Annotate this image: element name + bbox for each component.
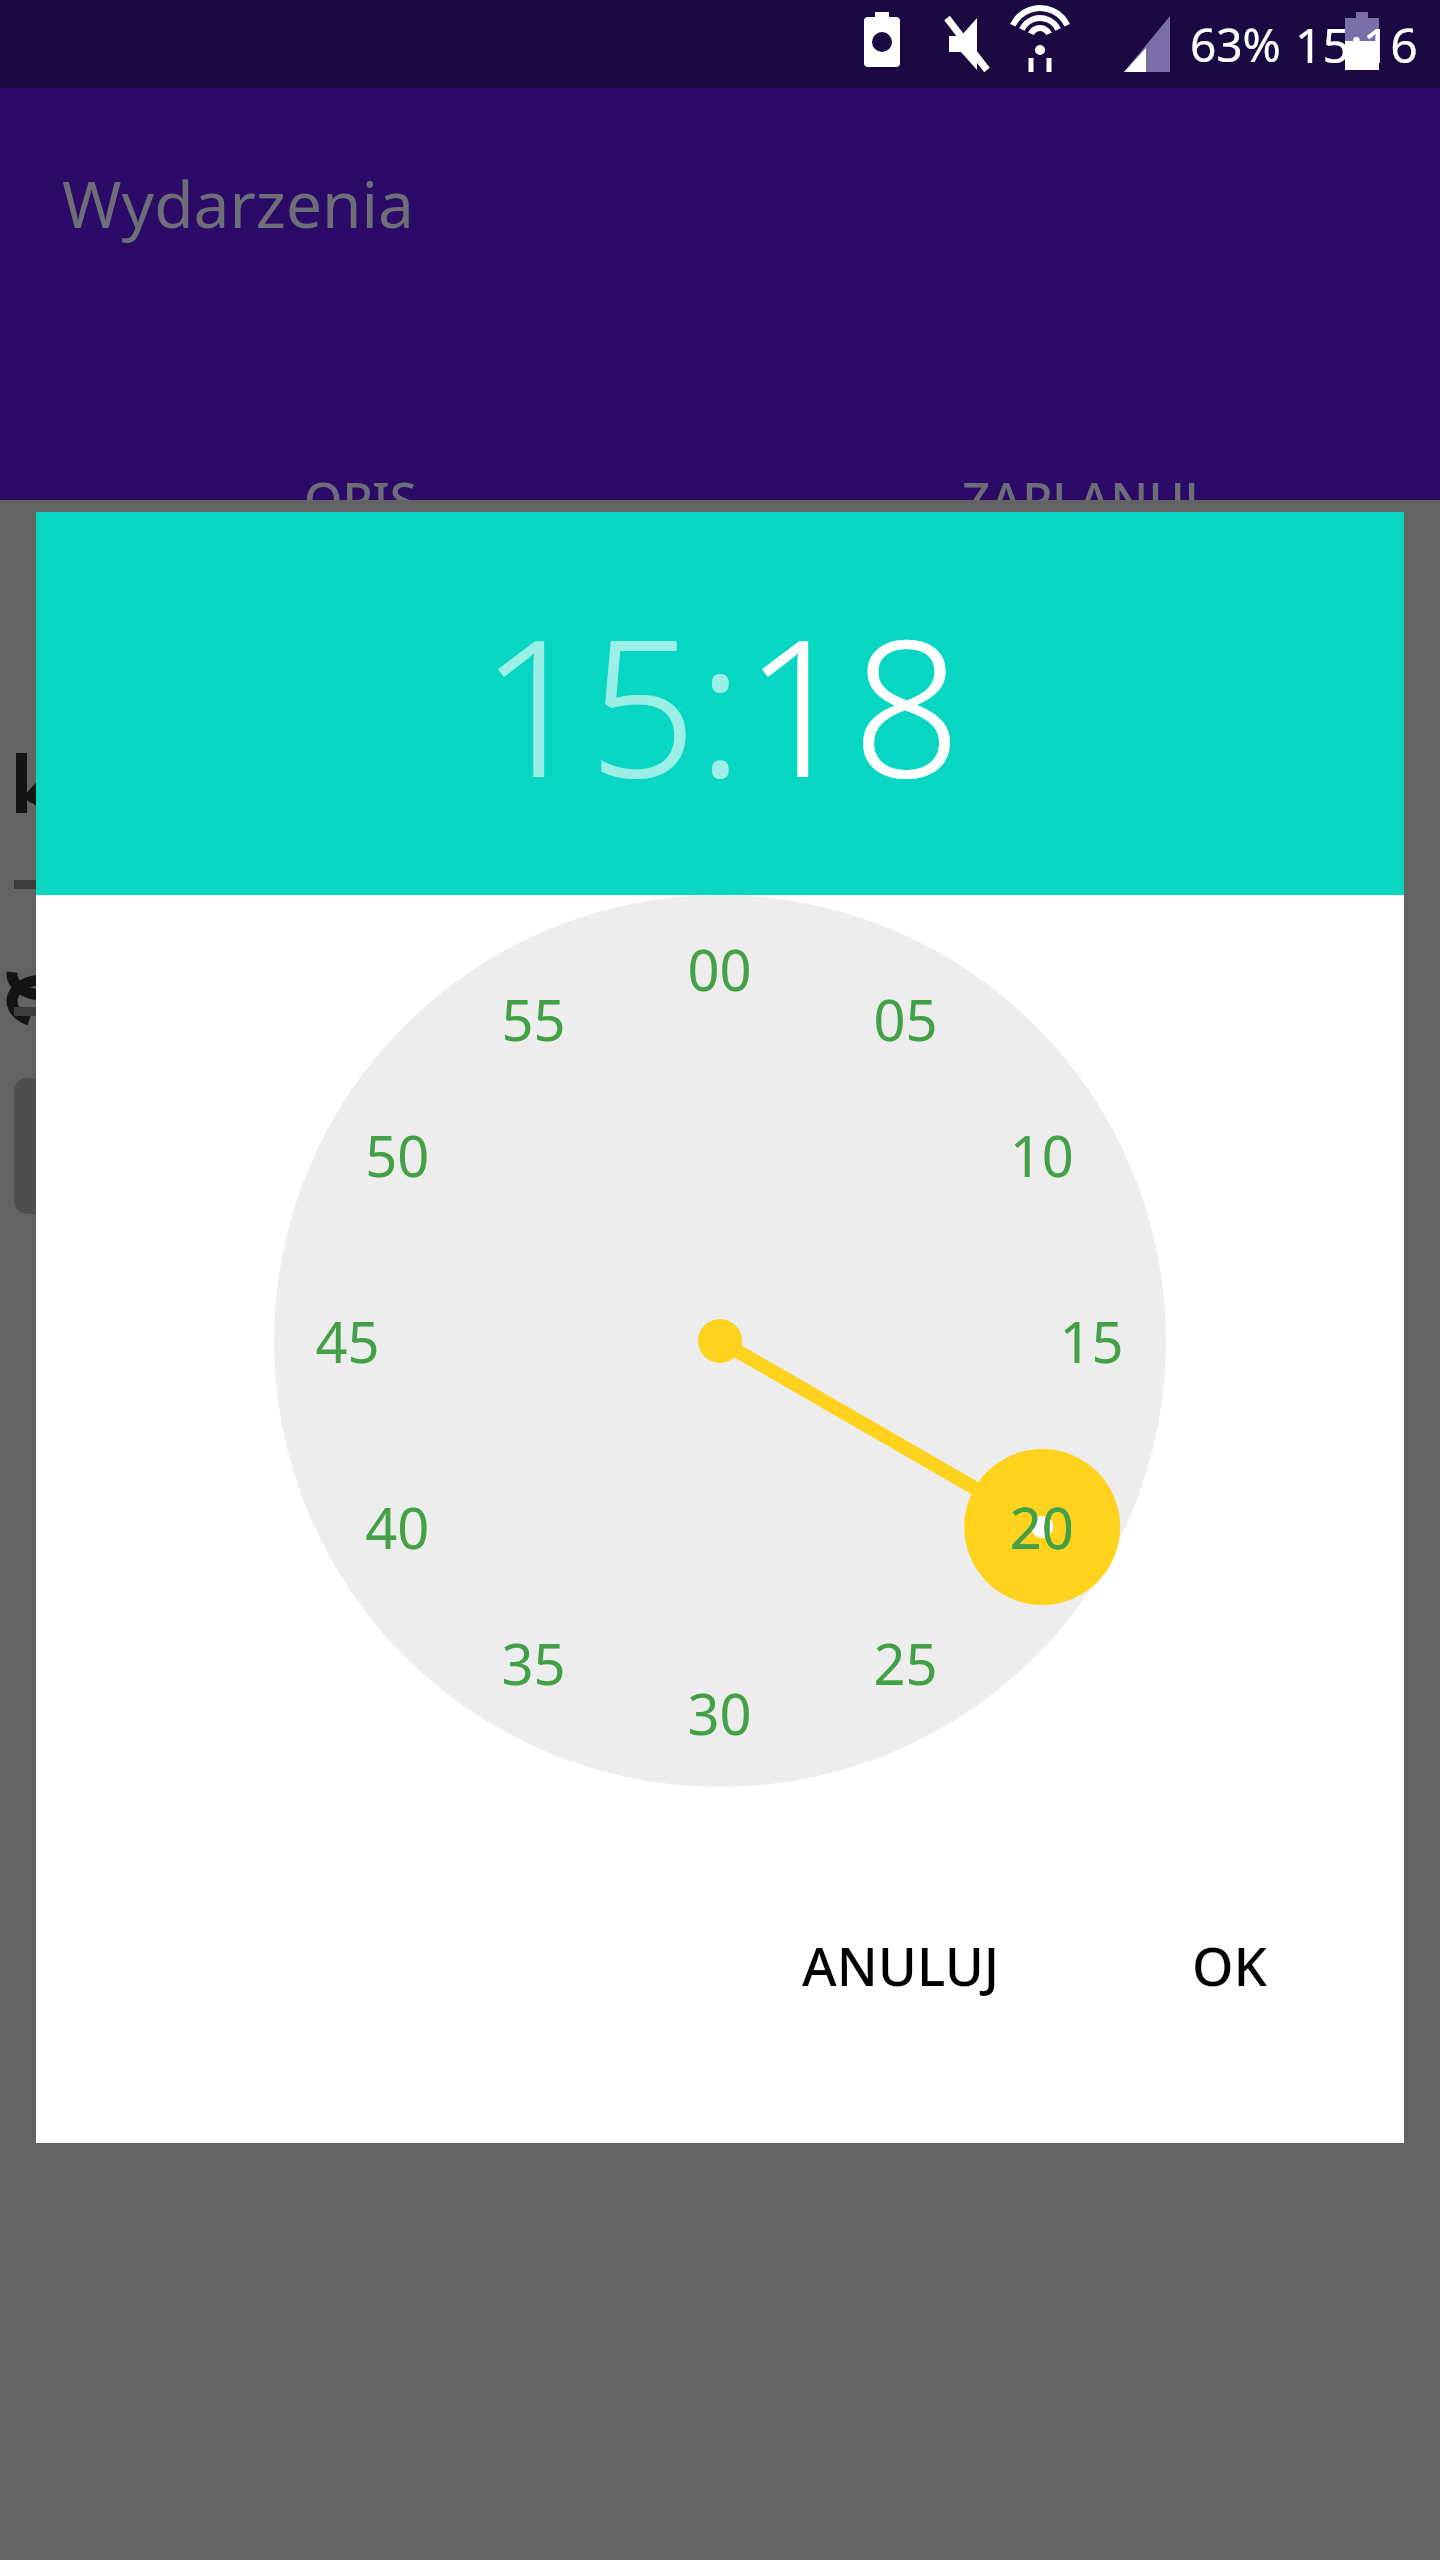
other: Status bar — [0, 0, 1440, 88]
button[interactable]: ANULUJ — [768, 1911, 1034, 2019]
staticText: ZAPLANUJ — [962, 466, 1199, 500]
staticText: OK — [1192, 1929, 1268, 2001]
staticText: Wydarzenia — [62, 160, 414, 247]
staticText: OPIS — [304, 466, 417, 500]
staticText: 15 — [480, 574, 697, 833]
staticText: : — [697, 574, 744, 833]
button[interactable]: OK — [1158, 1911, 1302, 2019]
staticText: ANULUJ — [802, 1929, 1000, 2001]
button[interactable]: Minute picker — [36, 895, 1404, 1911]
button[interactable]: 18 — [744, 574, 961, 833]
button[interactable]: OPIS — [0, 466, 720, 500]
button[interactable]: ZAPLANUJ — [720, 466, 1440, 500]
staticText: 18 — [744, 574, 961, 833]
button[interactable]: 15 — [480, 574, 697, 833]
